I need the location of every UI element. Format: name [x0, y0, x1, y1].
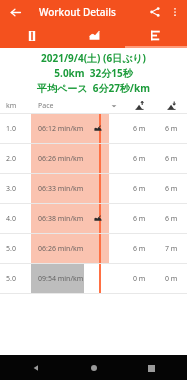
button[interactable]: Splits	[125, 23, 187, 48]
staticText: km	[6, 101, 17, 111]
staticText: 5.0	[6, 274, 16, 284]
button[interactable]: 3.0	[0, 174, 187, 204]
staticText: 6 m	[165, 214, 178, 224]
staticText: 6 m	[133, 214, 146, 224]
button[interactable]: Home	[84, 358, 104, 378]
staticText: Workout Details	[39, 5, 116, 19]
staticText: 0 m	[165, 274, 178, 284]
staticText: 6 m	[133, 244, 146, 254]
button[interactable]: Recent apps	[141, 358, 161, 378]
staticText: 06:12 min/km	[38, 124, 84, 134]
button[interactable]: Pace	[31, 97, 123, 114]
staticText: 2021/9/4(土) (6日ぶり)	[41, 51, 146, 65]
staticText: 6 m	[165, 184, 178, 194]
staticText: 3.0	[6, 184, 16, 194]
staticText: 06:26 min/km	[38, 154, 84, 164]
staticText: 6 m	[133, 154, 146, 164]
button[interactable]: Share	[144, 1, 165, 22]
button[interactable]: 1.0	[0, 114, 187, 144]
staticText: 06:33 min/km	[38, 184, 84, 194]
staticText: 5.0km 32分15秒	[54, 66, 133, 80]
button[interactable]: Chart	[63, 23, 125, 48]
staticText: 0 m	[133, 274, 146, 284]
staticText: 平均ペース 6分27秒/km	[37, 81, 150, 95]
staticText: 4.0	[6, 214, 16, 224]
staticText: 06:38 min/km	[38, 214, 84, 224]
staticText: 6 m	[133, 184, 146, 194]
staticText: 6 m	[165, 124, 178, 134]
button[interactable]: 2.0	[0, 144, 187, 174]
staticText: 1.0	[6, 124, 16, 134]
button[interactable]: 4.0	[0, 204, 187, 234]
button[interactable]: 5.0	[0, 234, 187, 264]
staticText: 5.0	[6, 244, 16, 254]
button[interactable]: Map	[0, 23, 63, 48]
staticText: 7 m	[165, 244, 178, 254]
button[interactable]: Back	[26, 358, 46, 378]
staticText: 06:26 min/km	[38, 244, 84, 254]
staticText: 2.0	[6, 154, 16, 164]
button[interactable]: 5.0	[0, 264, 187, 294]
staticText: 09:54 min/km	[38, 274, 84, 284]
button[interactable]: More options	[165, 2, 184, 21]
staticText: 6 m	[133, 124, 146, 134]
staticText: Pace	[38, 101, 54, 111]
staticText: 6 m	[165, 154, 178, 164]
button[interactable]: Back	[4, 1, 26, 23]
